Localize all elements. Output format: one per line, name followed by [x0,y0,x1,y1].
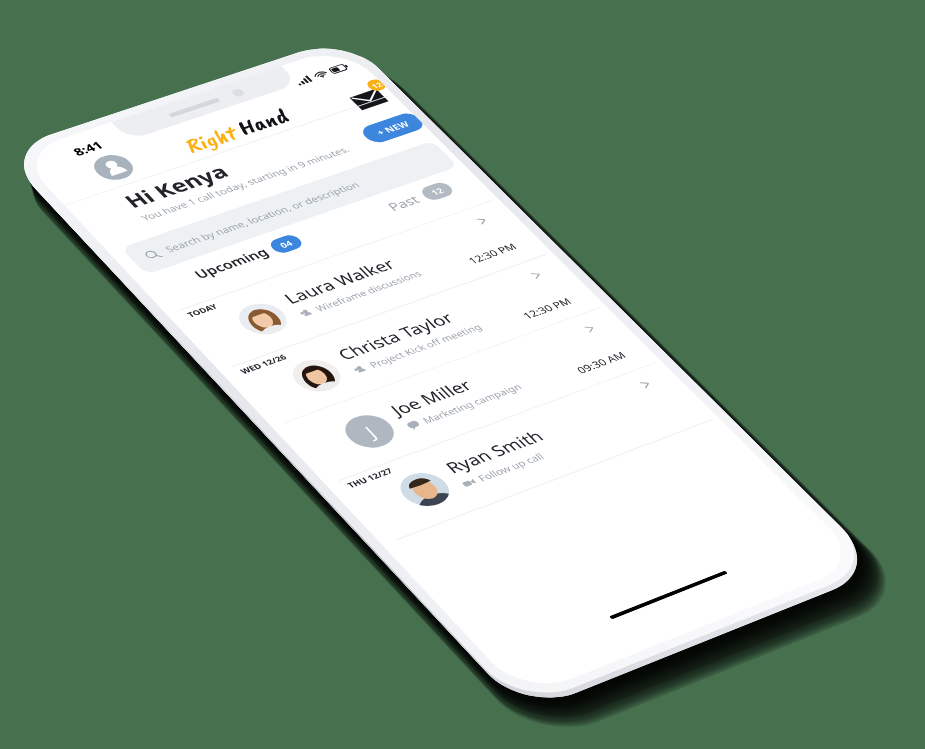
staticText: THU 12/27 [344,465,395,490]
staticText: 12 [368,80,385,90]
staticText: Joe Miller [385,375,478,420]
button[interactable]: J [336,410,403,453]
button[interactable]: + NEW [358,111,426,145]
staticText: 12:30 PM [519,295,575,322]
button[interactable]: Joe Miller [385,362,524,432]
staticText: 8:41 [69,138,107,159]
button[interactable]: Ryan Smith [440,426,561,490]
staticText: Right [175,121,243,159]
staticText: + NEW [373,118,412,137]
staticText: Past [384,192,424,214]
staticText: Project Kick off meeting [366,321,484,370]
button[interactable] [283,354,350,397]
button[interactable]: Laura Walker [279,250,424,319]
staticText: Hand [228,104,295,141]
staticText: 04 [277,238,295,250]
staticText: Hi Kenya [118,159,234,213]
staticText: J [358,421,383,442]
staticText: You have 1 call today, starting in 9 min… [138,144,353,224]
button[interactable] [391,467,459,512]
button[interactable]: Messages [341,77,398,111]
staticText: Christa Taylor [332,308,459,365]
staticText: Marketing campaign [419,381,524,426]
staticText: Upcoming [190,244,272,282]
button[interactable]: Search by name, location, or description [120,140,459,275]
staticText: Laura Walker [279,254,401,308]
button[interactable]: Upcoming [190,233,306,282]
button[interactable]: Christa Taylor [332,303,484,376]
staticText: 09:30 AM [573,349,629,376]
staticText: 12:30 PM [465,240,520,266]
button[interactable]: Profile [87,151,140,184]
button[interactable]: Past [384,180,457,214]
staticText: Search by name, location, or description [162,179,363,255]
staticText: 12 [428,185,446,197]
staticText: Wireframe discussions [312,268,424,314]
staticText: Ryan Smith [440,426,549,478]
staticText: WED 12/26 [238,352,290,376]
staticText: Follow up call [475,450,547,484]
button[interactable] [230,298,296,340]
staticText: TODAY [184,301,220,319]
